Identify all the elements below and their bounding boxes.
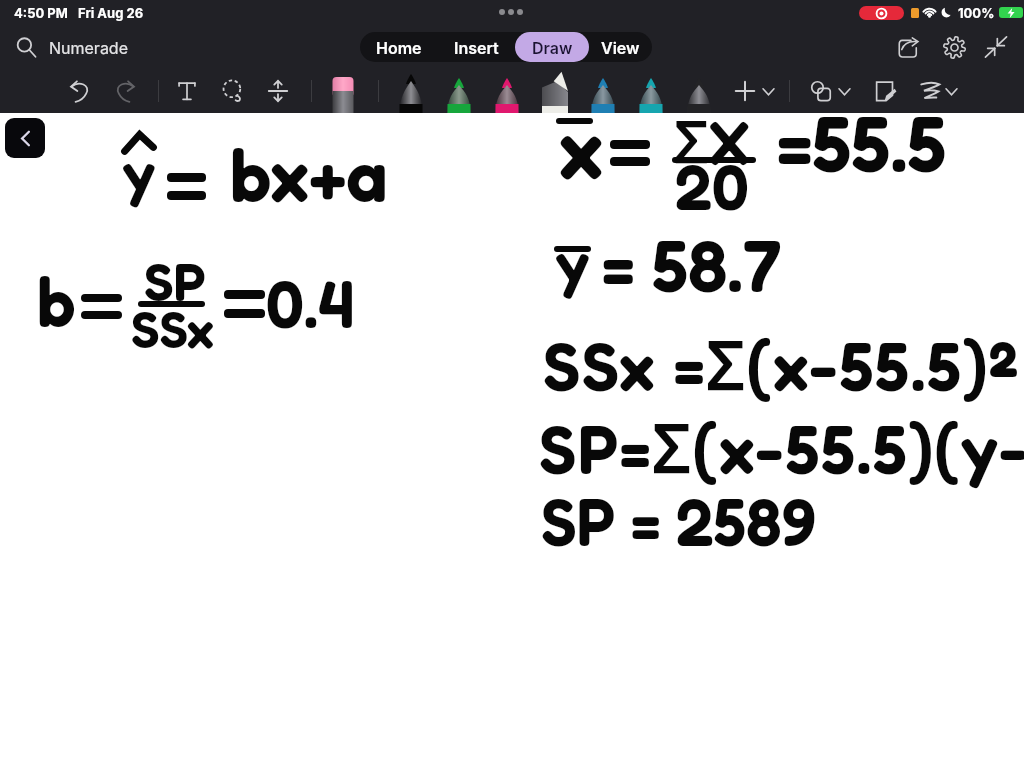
staticText: Insert (454, 38, 499, 57)
staticText: ΣX (674, 100, 751, 182)
staticText: SSx =Σ(x-55.5)² (543, 317, 1020, 410)
staticText: Draw (532, 38, 573, 57)
button[interactable]: Draw (515, 32, 589, 62)
staticText: 100% (958, 5, 995, 21)
button[interactable]: Search (12, 30, 136, 64)
staticText: SSx (131, 297, 214, 360)
staticText: SP = 2589 (541, 482, 816, 561)
staticText: = 58.7 (602, 221, 782, 308)
staticText: b (37, 259, 76, 342)
staticText: 0.4 (266, 263, 355, 343)
staticText: y (555, 225, 590, 300)
button[interactable]: Scribble (916, 76, 946, 106)
button[interactable]: Add tool (730, 76, 760, 106)
button[interactable]: Black pen (389, 69, 433, 113)
staticText: 4:50 PM (14, 5, 68, 21)
button[interactable]: Stop recording (859, 6, 904, 20)
staticText: Home (376, 38, 422, 57)
button[interactable]: Note (870, 76, 900, 106)
staticText: y (122, 136, 156, 209)
staticText: 20 (675, 147, 749, 224)
staticText: Fri Aug 26 (78, 5, 144, 21)
button[interactable]: More options (834, 81, 854, 101)
button[interactable]: More options (758, 81, 778, 101)
staticText: SP (144, 248, 206, 313)
button[interactable]: Shapes (806, 76, 836, 106)
staticText: x (559, 96, 603, 198)
button[interactable]: Undo (65, 76, 95, 106)
staticText: SP=Σ(x-55.5)(y- (539, 400, 1024, 493)
button[interactable]: Redo (110, 76, 140, 106)
button[interactable]: Green pen (437, 69, 481, 113)
button[interactable]: Lasso select (218, 76, 248, 106)
button[interactable]: Collapse (980, 31, 1012, 63)
button[interactable]: Home (360, 32, 437, 62)
button[interactable]: Settings (938, 31, 970, 63)
button[interactable]: Teal pen (581, 69, 625, 113)
button[interactable]: Pink pen (485, 69, 529, 113)
button[interactable]: Share (892, 31, 924, 63)
staticText: bx+a (230, 129, 388, 219)
button[interactable]: View (589, 32, 652, 62)
button[interactable]: Highlighter (533, 69, 577, 113)
button[interactable]: Grey pen (677, 69, 721, 113)
button[interactable]: More options (941, 81, 961, 101)
other: Search (12, 33, 40, 61)
button[interactable]: Eraser (321, 69, 365, 113)
staticText: =55.5 (777, 95, 947, 189)
button[interactable]: Blue pen (629, 69, 673, 113)
button[interactable]: Insert space (263, 76, 293, 106)
staticText: Numerade (49, 38, 128, 57)
button[interactable]: Text (172, 76, 202, 106)
button[interactable]: Back (5, 118, 45, 158)
button[interactable]: Insert (437, 32, 515, 62)
staticText: View (601, 38, 640, 57)
